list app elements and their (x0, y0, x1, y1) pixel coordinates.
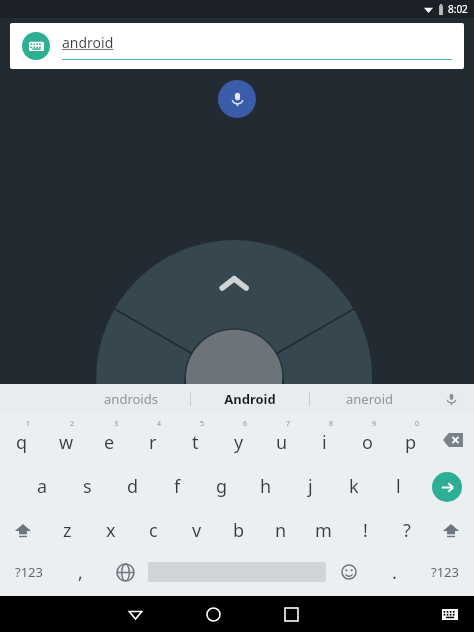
button[interactable]: Android (191, 384, 309, 414)
staticText: 8 (329, 419, 334, 429)
button[interactable]: 2 (44, 416, 88, 464)
staticText: e (104, 430, 115, 455)
button[interactable]: Keyboard input method (22, 32, 50, 60)
staticText: x (106, 518, 116, 543)
staticText: 0 (415, 419, 420, 429)
staticText: Android (224, 390, 276, 408)
button[interactable]: j (288, 464, 332, 509)
button[interactable]: 9 (346, 416, 389, 464)
staticText: 6 (243, 419, 248, 429)
staticText: 4 (157, 419, 162, 429)
staticText: 1 (26, 419, 31, 429)
staticText: a (37, 474, 48, 499)
button[interactable]: Shift (428, 509, 474, 551)
button[interactable]: 5 (174, 416, 217, 464)
staticText: s (83, 474, 92, 499)
button[interactable]: x (89, 509, 132, 551)
button[interactable]: Keyboard input method (10, 23, 464, 69)
button[interactable]: 0 (389, 416, 432, 464)
staticText: ? (403, 518, 411, 543)
button[interactable]: Delete (432, 416, 474, 464)
button[interactable]: aneroid (310, 384, 428, 414)
button[interactable]: v (175, 509, 218, 551)
staticText: j (308, 474, 313, 499)
button[interactable]: . (372, 551, 416, 593)
staticText: q (16, 430, 28, 455)
staticText: f (174, 474, 181, 499)
button[interactable]: m (302, 509, 344, 551)
button[interactable]: 4 (131, 416, 174, 464)
staticText: 5 (200, 419, 205, 429)
staticText: g (216, 474, 228, 499)
button[interactable]: ?123 (0, 551, 58, 593)
button[interactable]: d (110, 464, 155, 509)
button[interactable]: 1 (0, 416, 44, 464)
button[interactable]: k (332, 464, 376, 509)
button[interactable]: , (58, 551, 102, 593)
staticText: r (149, 430, 157, 455)
staticText: l (396, 474, 401, 499)
button[interactable]: a (20, 464, 65, 509)
staticText: h (260, 474, 272, 499)
button[interactable]: c (132, 509, 175, 551)
staticText: b (233, 518, 245, 543)
button[interactable]: Home (174, 596, 252, 632)
staticText: m (315, 518, 332, 543)
button[interactable]: 6 (217, 416, 260, 464)
staticText: , (78, 560, 83, 585)
button[interactable]: n (260, 509, 302, 551)
button[interactable]: b (218, 509, 260, 551)
button[interactable]: Switch keyboard (426, 596, 474, 632)
button[interactable]: ! (344, 509, 386, 551)
staticText: 7 (286, 419, 291, 429)
staticText: c (149, 518, 158, 543)
button[interactable]: ?123 (416, 551, 474, 593)
staticText: aneroid (346, 390, 393, 408)
staticText: i (322, 430, 327, 455)
button[interactable]: g (200, 464, 244, 509)
staticText: android (62, 33, 114, 52)
button[interactable]: 3 (88, 416, 131, 464)
button[interactable]: Change language (102, 551, 148, 593)
button[interactable]: s (65, 464, 110, 509)
staticText: v (192, 518, 202, 543)
staticText: 9 (372, 419, 377, 429)
staticText: w (59, 430, 74, 455)
staticText: n (275, 518, 287, 543)
staticText: o (362, 430, 373, 455)
button[interactable]: Recent apps (252, 596, 330, 632)
button[interactable]: Shift (0, 509, 46, 551)
button[interactable]: z (46, 509, 89, 551)
staticText: 3 (114, 419, 119, 429)
staticText: ?123 (431, 563, 459, 581)
button[interactable]: 8 (303, 416, 346, 464)
button[interactable]: androids (72, 384, 190, 414)
staticText: 2 (70, 419, 75, 429)
staticText: z (63, 518, 72, 543)
staticText: ! (363, 518, 368, 543)
button[interactable]: 7 (260, 416, 303, 464)
button[interactable]: Voice typing (428, 384, 474, 414)
staticText: t (192, 430, 199, 455)
button[interactable]: h (244, 464, 288, 509)
button[interactable]: Emoji (326, 551, 372, 593)
staticText: 8:02 (448, 2, 468, 16)
staticText: y (234, 430, 244, 455)
button[interactable]: Back (96, 596, 174, 632)
staticText: androids (104, 390, 158, 408)
staticText: p (405, 430, 417, 455)
staticText: u (276, 430, 288, 455)
staticText: k (349, 474, 359, 499)
button[interactable]: l (376, 464, 420, 509)
button[interactable]: f (155, 464, 200, 509)
staticText: . (392, 560, 397, 585)
button[interactable]: Voice input (218, 80, 256, 118)
button[interactable]: ? (386, 509, 428, 551)
staticText: ?123 (15, 563, 43, 581)
staticText: d (127, 474, 139, 499)
button[interactable]: Enter (420, 464, 474, 509)
